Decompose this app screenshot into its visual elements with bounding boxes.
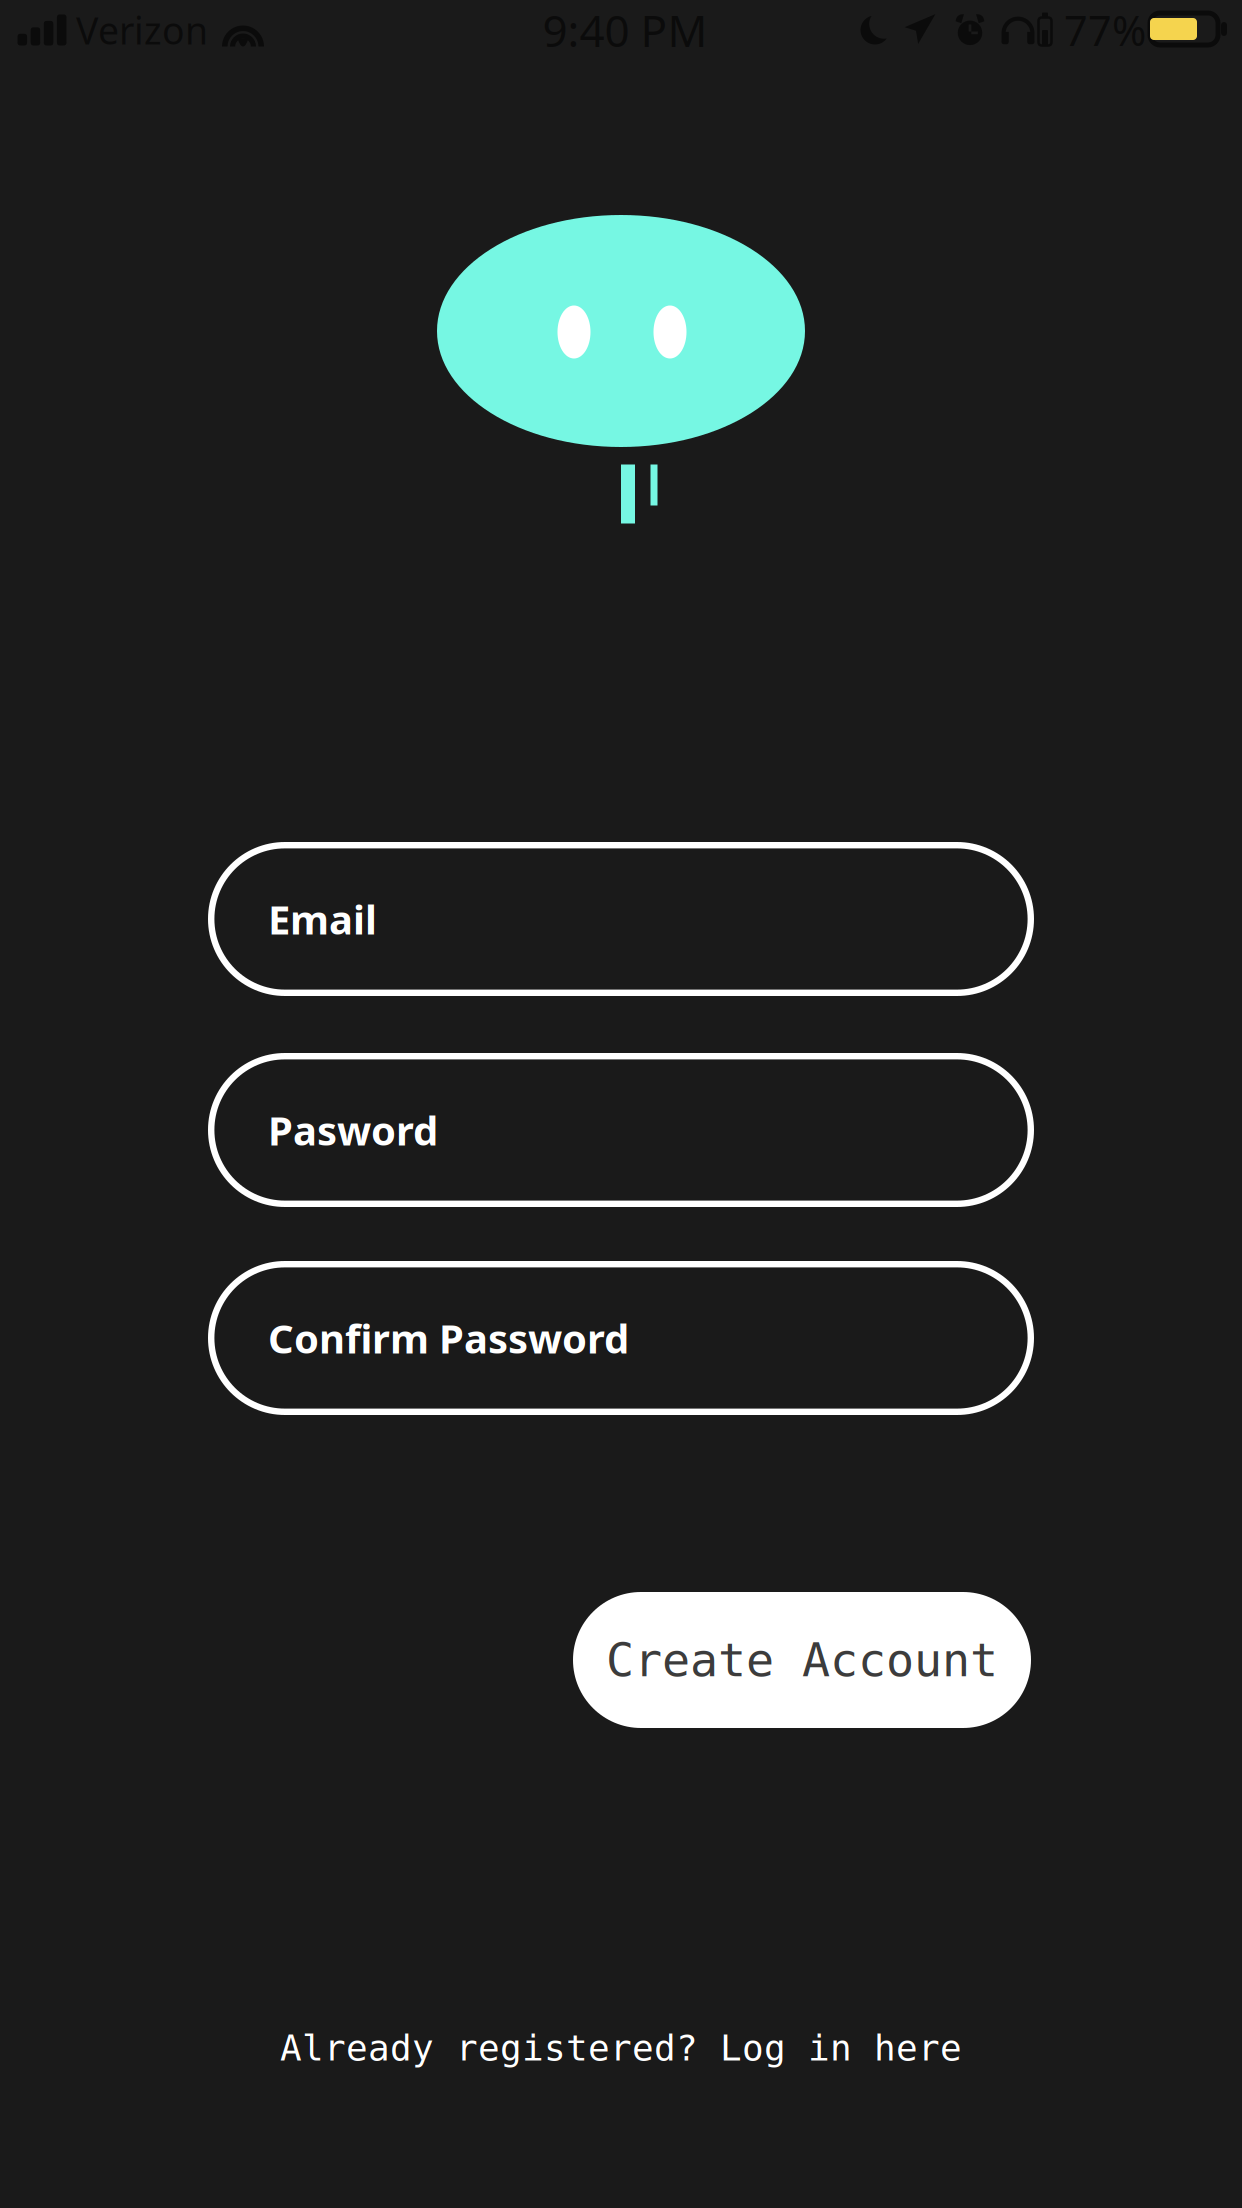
staticText: Confirm Password [268,1311,629,1364]
button[interactable]: Create Account [573,1592,1031,1728]
button[interactable]: Confirm Password [208,1261,1034,1415]
staticText: Pasword [268,1103,438,1156]
staticText: 9:40 PM [542,1,707,59]
staticText: 77% [1064,3,1146,57]
staticText: Already registered? Log in here [280,2028,962,2068]
button[interactable]: Already registered? Log in here [241,2020,1001,2076]
button[interactable]: Email [208,842,1034,996]
staticText: Verizon [76,5,208,55]
button[interactable]: Pasword [208,1053,1034,1207]
staticText: Email [268,892,377,945]
staticText: Create Account [606,1633,998,1686]
